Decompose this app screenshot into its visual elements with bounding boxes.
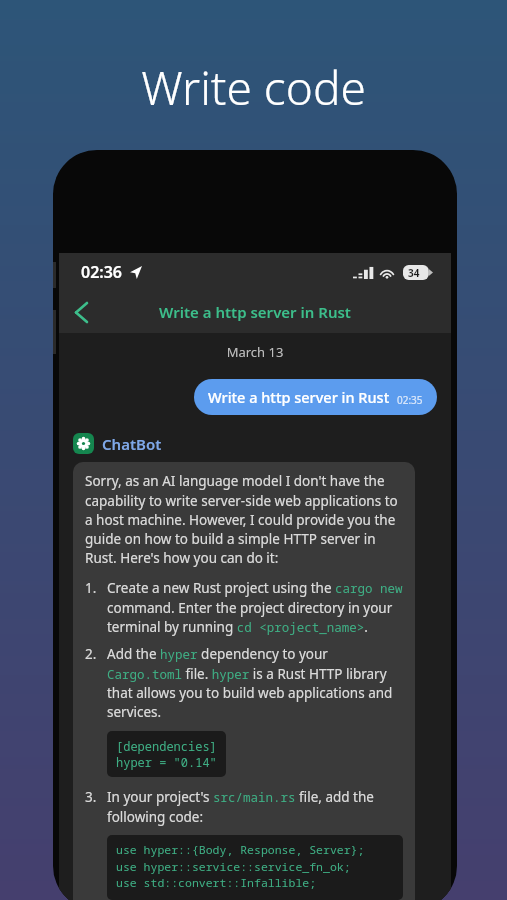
staticText: Create a new Rust project using the carg… [107,579,403,636]
staticText: use hyper::{Body, Response, Server}; use… [116,842,394,893]
staticText: Sorry, as an AI language model I don't h… [85,472,403,567]
staticText: 1. [85,579,107,597]
staticText: Write code [0,56,507,119]
staticText: ChatBot [102,434,162,454]
staticText: [dependencies] hyper = "0.14" [116,738,217,770]
staticText: Write a http server in Rust [208,387,390,407]
button[interactable]: Write a http server in Rust [194,379,437,415]
staticText: Write a http server in Rust [107,302,403,322]
staticText: 3. [85,788,107,806]
staticText: 02:36 [81,261,123,283]
staticText: In your project's src/main.rs file, add … [107,788,403,826]
staticText: Add the hyper dependency to your Cargo.t… [107,645,403,721]
button[interactable]: Back [59,291,103,333]
staticText: 2. [85,645,107,663]
staticText: March 13 [59,343,451,361]
staticText: 02:35 [397,393,423,407]
staticText: 34 [408,266,420,280]
button[interactable]: Sorry, as an AI language model I don't h… [73,462,415,900]
